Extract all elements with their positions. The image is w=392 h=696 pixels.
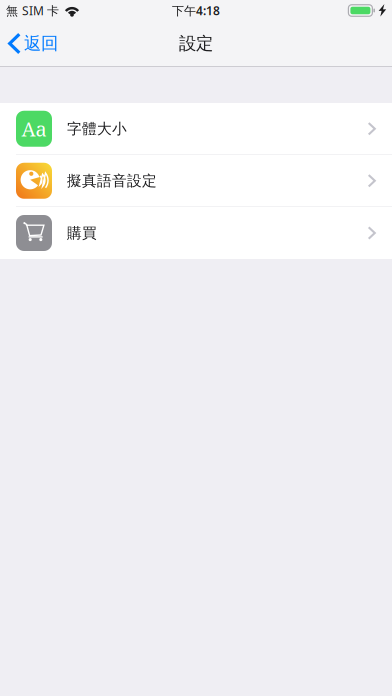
staticText: 下午4:18 xyxy=(172,2,220,18)
button[interactable]: 擬真語音設定 xyxy=(0,155,392,207)
staticText: 購買 xyxy=(67,224,97,242)
staticText: 擬真語音設定 xyxy=(67,172,157,190)
staticText: 返回 xyxy=(24,33,58,54)
button[interactable]: 購買 xyxy=(0,207,392,259)
staticText: 設定 xyxy=(179,33,213,54)
staticText: Aa xyxy=(21,115,46,142)
staticText: 字體大小 xyxy=(67,120,127,138)
staticText: 無 SIM 卡 xyxy=(6,2,59,18)
button[interactable]: 返回 xyxy=(0,26,68,60)
button[interactable]: Aa xyxy=(0,103,392,155)
